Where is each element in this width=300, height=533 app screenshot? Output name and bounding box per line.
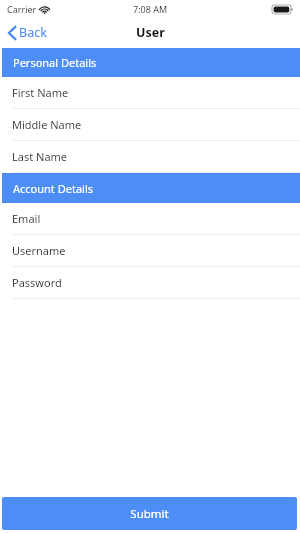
- staticText: Account Details: [13, 181, 93, 196]
- button[interactable]: Submit: [2, 497, 297, 530]
- button[interactable]: Account Details: [2, 173, 300, 203]
- button[interactable]: First Name: [0, 77, 300, 108]
- button[interactable]: Back: [0, 21, 57, 44]
- staticText: Email: [12, 211, 41, 226]
- staticText: Submit: [130, 506, 169, 522]
- staticText: User: [136, 24, 165, 41]
- button[interactable]: Password: [0, 267, 300, 298]
- staticText: Personal Details: [13, 55, 97, 70]
- staticText: Username: [12, 243, 66, 258]
- button[interactable]: Email: [0, 203, 300, 234]
- staticText: Carrier: [7, 3, 37, 15]
- staticText: Back: [19, 24, 47, 41]
- staticText: Last Name: [12, 149, 68, 164]
- staticText: Middle Name: [12, 117, 82, 132]
- button[interactable]: Last Name: [0, 141, 300, 172]
- button[interactable]: Middle Name: [0, 109, 300, 140]
- button[interactable]: Personal Details: [2, 48, 300, 77]
- staticText: First Name: [12, 85, 69, 100]
- staticText: Password: [12, 275, 62, 290]
- button[interactable]: Username: [0, 235, 300, 266]
- other: Back: [8, 26, 16, 40]
- staticText: 7:08 AM: [133, 3, 168, 15]
